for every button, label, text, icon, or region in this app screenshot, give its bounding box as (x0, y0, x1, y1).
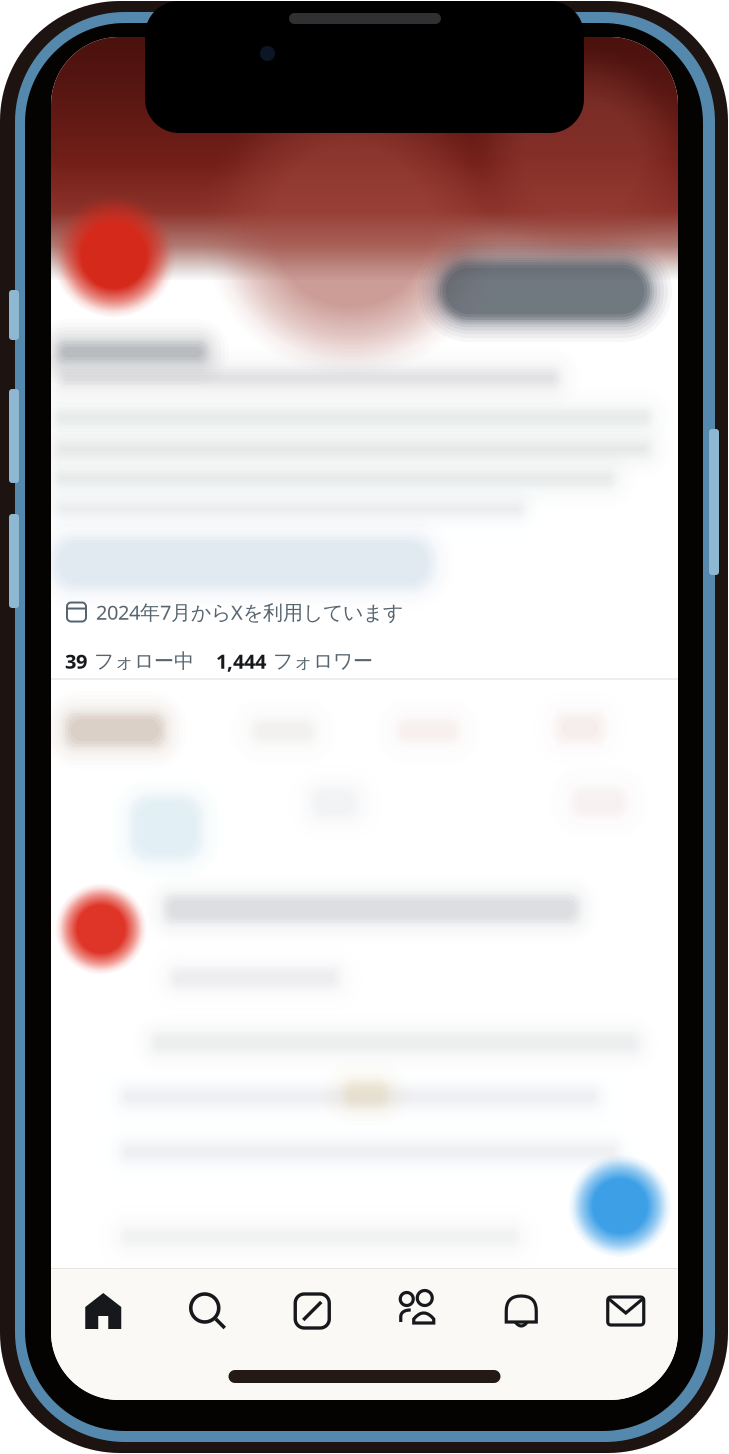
button[interactable]: New post (568, 1154, 672, 1258)
staticText: 39 (65, 648, 87, 674)
button[interactable] (440, 262, 650, 320)
staticText: フォロワー (273, 649, 373, 673)
button[interactable]: 1,444 (216, 648, 373, 674)
staticText: 2024年7月からXを利用しています (96, 599, 403, 625)
button[interactable]: 39 (65, 648, 194, 674)
button[interactable]: Messages (573, 1269, 678, 1353)
button[interactable]: Notifications (469, 1269, 573, 1353)
button[interactable]: Home (51, 1269, 155, 1353)
button[interactable]: Search (155, 1269, 260, 1353)
button[interactable]: Compose (260, 1269, 364, 1353)
button[interactable]: Communities (364, 1269, 469, 1353)
staticText: フォロー中 (94, 649, 194, 673)
staticText: 1,444 (216, 648, 266, 674)
